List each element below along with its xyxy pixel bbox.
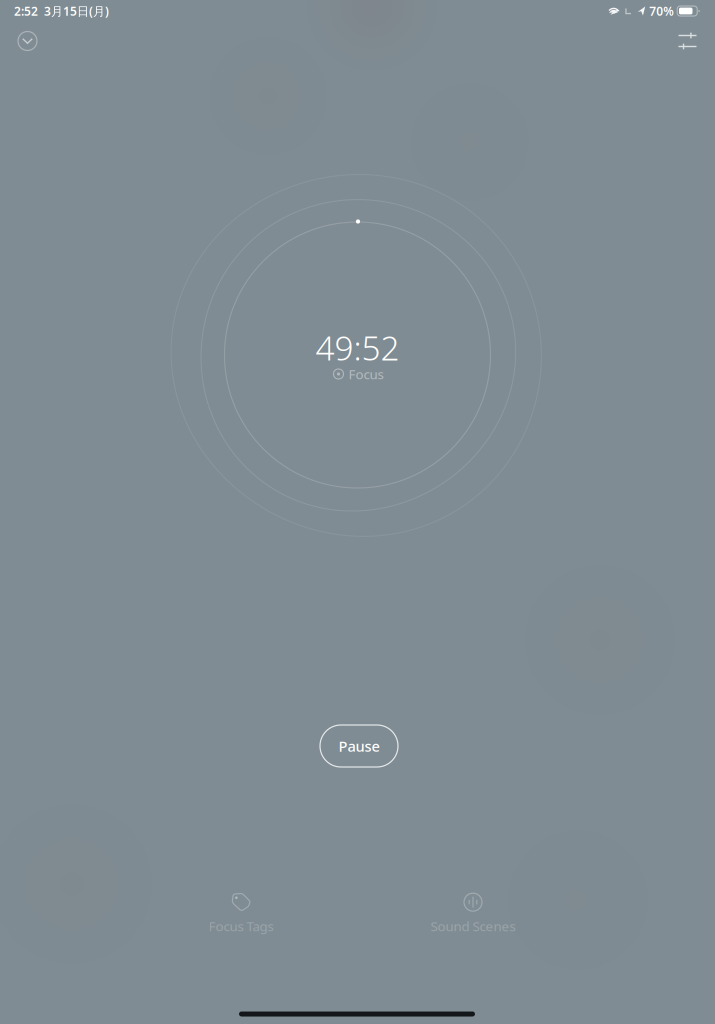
staticText: Sound Scenes xyxy=(430,917,515,935)
staticText: 49:52 xyxy=(315,325,399,370)
staticText: 70% xyxy=(649,3,674,19)
staticText: Pause xyxy=(338,736,379,756)
staticText: 2:52 xyxy=(14,3,38,19)
button[interactable]: Sound Scenes xyxy=(357,892,589,935)
staticText: 3月15日(月) xyxy=(38,3,109,19)
staticText: Focus xyxy=(348,365,383,383)
staticText: Focus Tags xyxy=(208,917,273,935)
button[interactable]: Session settings xyxy=(665,19,709,63)
button[interactable]: Dismiss xyxy=(5,19,49,63)
button[interactable]: Focus Tags xyxy=(125,892,357,935)
button[interactable]: Pause xyxy=(320,725,398,767)
